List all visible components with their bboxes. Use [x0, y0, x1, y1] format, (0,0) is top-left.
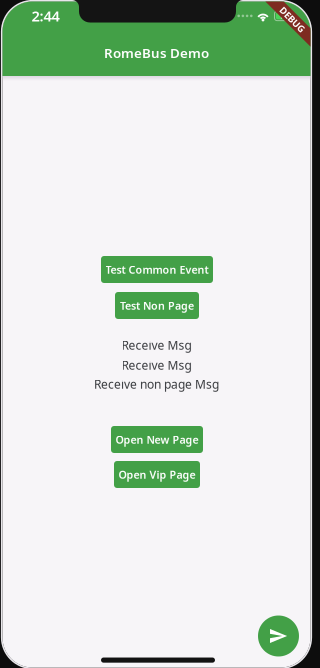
staticText: DEBUG: [276, 13, 308, 26]
button[interactable]: Test Common Event: [101, 256, 213, 283]
staticText: Test Common Event: [105, 262, 208, 277]
staticText: Open New Page: [115, 432, 198, 447]
button[interactable]: Test Non Page: [115, 292, 199, 319]
staticText: 2:44: [31, 6, 59, 26]
staticText: RomeBus Demo: [104, 44, 209, 62]
staticText: Receive non page Msg: [94, 376, 219, 392]
staticText: Open Vip Page: [118, 467, 195, 482]
staticText: Receive Msg: [121, 337, 191, 353]
button[interactable]: Send: [258, 615, 299, 656]
staticText: Receive Msg: [121, 357, 191, 373]
button[interactable]: Open Vip Page: [114, 461, 200, 488]
staticText: Test Non Page: [120, 298, 194, 313]
button[interactable]: Open New Page: [111, 426, 203, 453]
